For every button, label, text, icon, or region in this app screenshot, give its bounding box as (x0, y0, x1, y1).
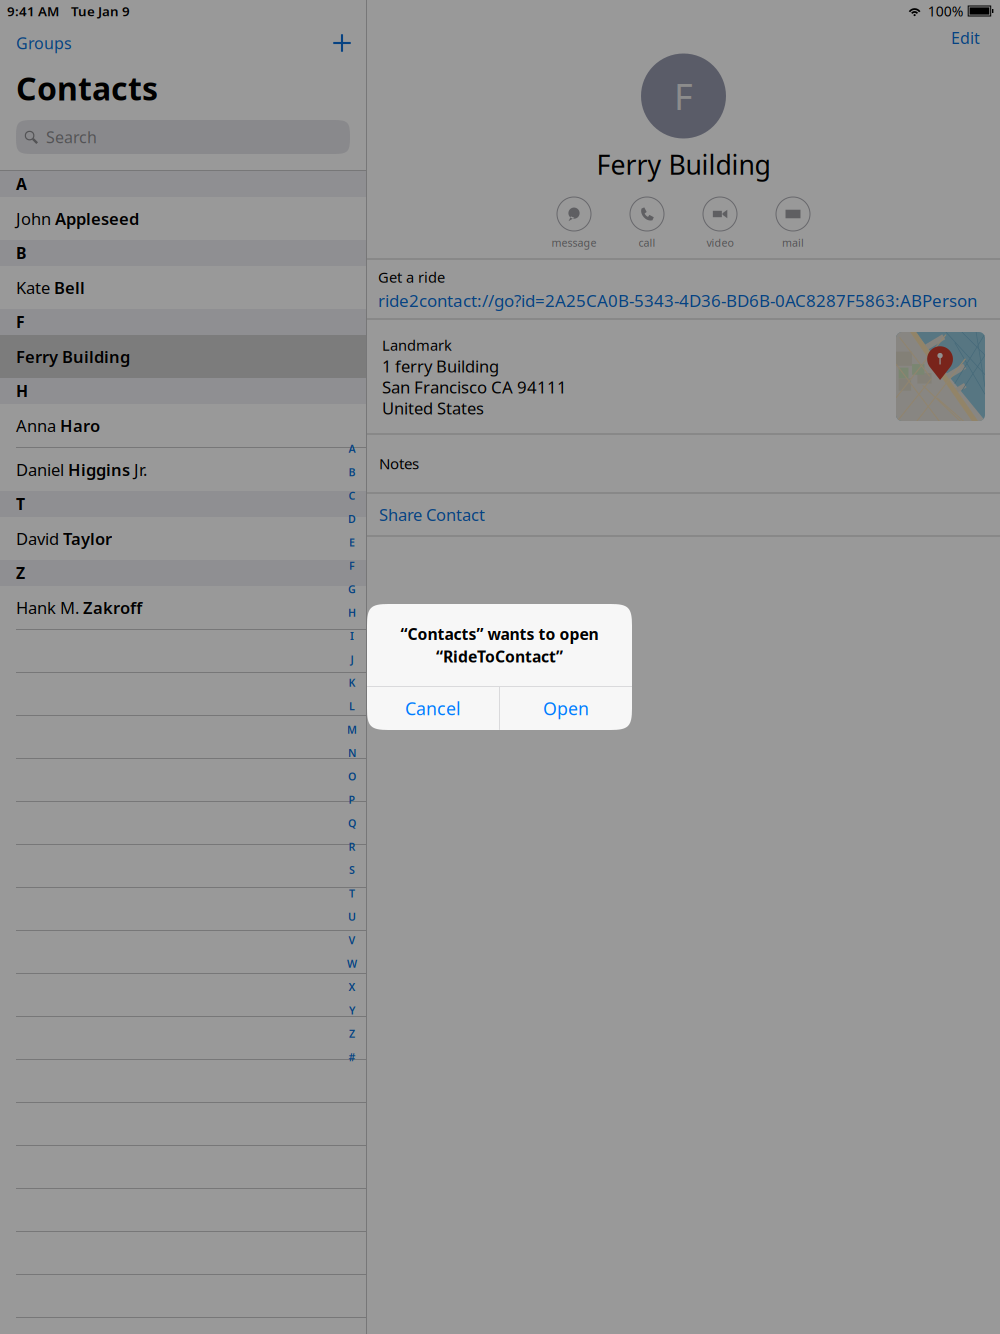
staticText: Notes (379, 453, 419, 474)
button[interactable]: David (0, 517, 366, 560)
button[interactable]: Ferry Building (0, 335, 366, 378)
staticText: J (350, 652, 353, 666)
staticText: Edit (951, 27, 980, 48)
staticText: mail (782, 235, 804, 250)
staticText: Y (349, 1003, 355, 1017)
staticText: call (638, 235, 655, 250)
staticText: F (349, 559, 355, 573)
staticText: A (348, 442, 355, 456)
staticText: 9:41 AM (7, 2, 59, 20)
staticText: Open (543, 696, 589, 720)
staticText: Higgins (68, 458, 130, 481)
button[interactable]: Cancel (367, 687, 499, 730)
button[interactable]: mail (756, 196, 829, 253)
staticText: C (348, 488, 355, 503)
staticText: Q (348, 816, 356, 830)
staticText: V (348, 933, 355, 947)
staticText: M (347, 722, 357, 737)
button[interactable]: call (610, 196, 683, 253)
staticText: San Francisco CA 94111 (382, 376, 567, 398)
staticText: video (706, 235, 733, 250)
staticText: X (348, 980, 355, 994)
staticText: Haro (60, 414, 100, 437)
staticText: D (348, 512, 356, 526)
staticText: Hank M. (16, 596, 83, 619)
staticText: Tue Jan 9 (71, 2, 130, 20)
staticText: Bell (54, 276, 85, 299)
staticText: ride2contact://go?id=2A25CA0B-5343-4D36-… (378, 289, 977, 312)
button[interactable]: Open (500, 687, 632, 730)
staticText: N (348, 746, 356, 760)
staticText: Search (46, 126, 97, 148)
staticText: F (16, 311, 25, 333)
staticText: Appleseed (55, 207, 139, 230)
staticText: A (16, 173, 27, 195)
staticText: W (347, 956, 357, 971)
staticText: Z (16, 562, 25, 584)
staticText: Landmark (382, 335, 452, 355)
staticText: Cancel (405, 696, 461, 720)
staticText: F (674, 72, 693, 120)
button[interactable]: Daniel (0, 448, 366, 491)
button[interactable]: Share Contact (367, 493, 1000, 535)
staticText: Contacts (16, 66, 158, 110)
staticText: Kate (16, 276, 54, 299)
staticText: # (348, 1050, 355, 1064)
button[interactable]: Anna (0, 404, 366, 447)
staticText: R (348, 839, 355, 854)
staticText: O (348, 769, 356, 783)
staticText: P (348, 793, 355, 807)
staticText: 1 ferry Building (382, 355, 499, 377)
staticText: Anna (16, 414, 60, 437)
staticText: E (349, 535, 355, 549)
staticText: “RideToContact” (436, 646, 563, 667)
button[interactable]: Edit (951, 22, 980, 53)
button[interactable]: Groups (16, 22, 72, 64)
staticText: B (348, 465, 355, 479)
staticText: “Contacts” wants to open (400, 623, 598, 645)
staticText: 100% (928, 1, 964, 21)
staticText: Jr. (130, 458, 147, 481)
button[interactable]: Kate (0, 266, 366, 309)
staticText: K (348, 676, 355, 690)
staticText: United States (382, 397, 484, 419)
staticText: Daniel (16, 458, 68, 481)
staticText: S (349, 863, 355, 877)
staticText: L (349, 699, 355, 713)
staticText: Z (349, 1027, 355, 1041)
staticText: message (551, 235, 596, 250)
staticText: T (349, 886, 355, 900)
staticText: U (348, 910, 356, 924)
staticText: Share Contact (379, 503, 485, 526)
staticText: G (348, 582, 356, 596)
staticText: Taylor (63, 527, 112, 550)
staticText: T (16, 493, 25, 515)
button[interactable]: Add contact (321, 22, 363, 64)
staticText: Groups (16, 32, 72, 54)
staticText: B (16, 242, 26, 264)
button[interactable]: message (537, 196, 610, 253)
button[interactable]: video (683, 196, 756, 253)
button[interactable]: John (0, 197, 366, 240)
staticText: Ferry Building (596, 146, 770, 183)
staticText: H (348, 605, 356, 620)
staticText: Ferry Building (16, 345, 130, 368)
staticText: Zakroff (83, 596, 142, 619)
staticText: I (350, 629, 354, 643)
staticText: John (16, 207, 55, 230)
staticText: H (16, 380, 28, 402)
button[interactable]: Hank M. (0, 586, 366, 629)
staticText: David (16, 527, 63, 550)
staticText: Get a ride (378, 267, 445, 287)
